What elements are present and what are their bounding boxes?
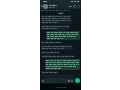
button[interactable]: Back: [40, 3, 81, 9]
button[interactable]: [41, 25, 70, 30]
button[interactable]: [46, 31, 80, 40]
button[interactable]: Send voice message: [75, 78, 80, 83]
button[interactable]: [41, 71, 59, 74]
button[interactable]: [41, 78, 74, 83]
button[interactable]: Video call: [69, 5, 72, 8]
button[interactable]: [41, 45, 73, 50]
button[interactable]: [41, 55, 75, 58]
button[interactable]: Call: [74, 5, 77, 8]
button[interactable]: [41, 51, 60, 54]
button[interactable]: More options: [78, 4, 80, 8]
button[interactable]: [41, 41, 62, 44]
button[interactable]: [41, 15, 72, 24]
button[interactable]: [45, 59, 80, 70]
